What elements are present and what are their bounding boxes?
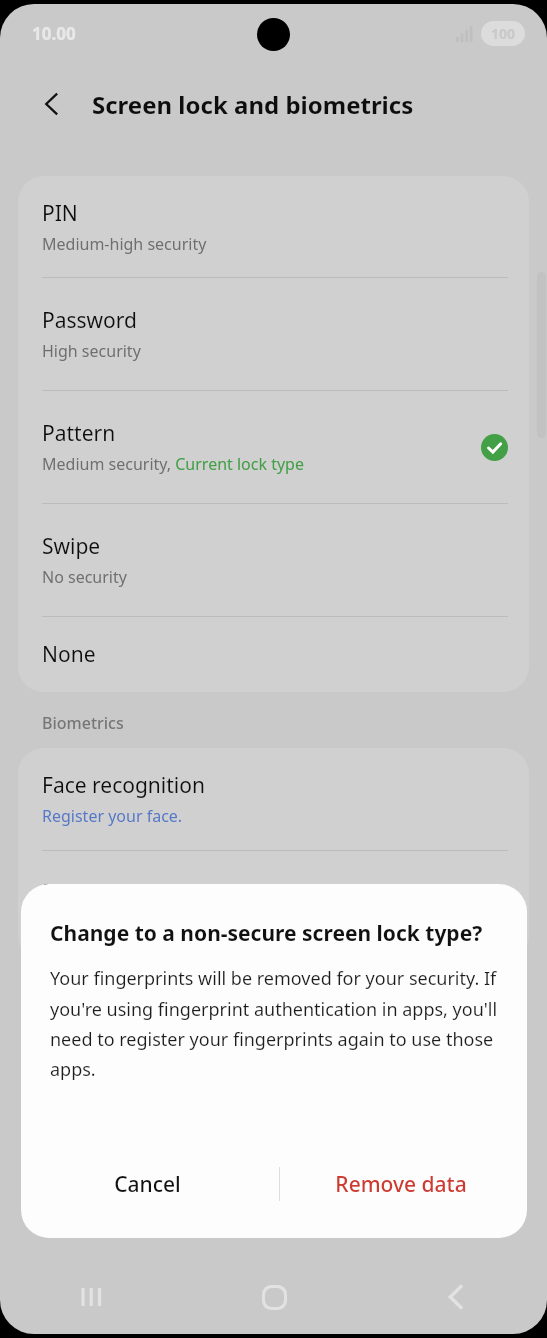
staticText: Change to a non-secure screen lock type? [50, 919, 483, 948]
button[interactable]: Face recognition [18, 748, 529, 850]
staticText: PIN [42, 199, 78, 228]
button[interactable]: Pattern [18, 391, 529, 503]
button[interactable]: None [18, 617, 529, 692]
staticText: Remove data [335, 1170, 467, 1199]
staticText: None [42, 640, 96, 669]
staticText: Password [42, 306, 137, 335]
staticText: Swipe [42, 532, 101, 561]
staticText: Medium-high security [42, 233, 207, 255]
staticText: Register fingerprints. [42, 912, 202, 934]
staticText: Biometrics [42, 712, 124, 734]
staticText: No security [42, 566, 127, 588]
staticText: 100 [491, 24, 516, 43]
button[interactable]: Fingerprints [18, 851, 529, 961]
button[interactable]: Back [365, 1260, 547, 1334]
staticText: Screen lock and biometrics [92, 88, 414, 121]
staticText: Register your face. [42, 805, 183, 827]
button[interactable]: Swipe [18, 504, 529, 616]
staticText: Medium security, Current lock type [42, 453, 304, 475]
button[interactable]: Cancel [21, 1138, 274, 1230]
staticText: High security [42, 340, 141, 362]
button[interactable]: Password [18, 278, 529, 390]
button[interactable]: Back [30, 82, 74, 126]
button[interactable]: Remove data [274, 1138, 527, 1230]
button[interactable]: Recent apps [0, 1260, 183, 1334]
button[interactable]: Home [183, 1260, 365, 1334]
staticText: Fingerprints [42, 878, 163, 907]
staticText: 10.00 [32, 22, 76, 45]
staticText: Pattern [42, 419, 116, 448]
staticText: Cancel [114, 1170, 181, 1199]
staticText: Your fingerprints will be removed for yo… [50, 966, 501, 1081]
button[interactable]: PIN [18, 176, 529, 277]
staticText: Face recognition [42, 771, 205, 800]
